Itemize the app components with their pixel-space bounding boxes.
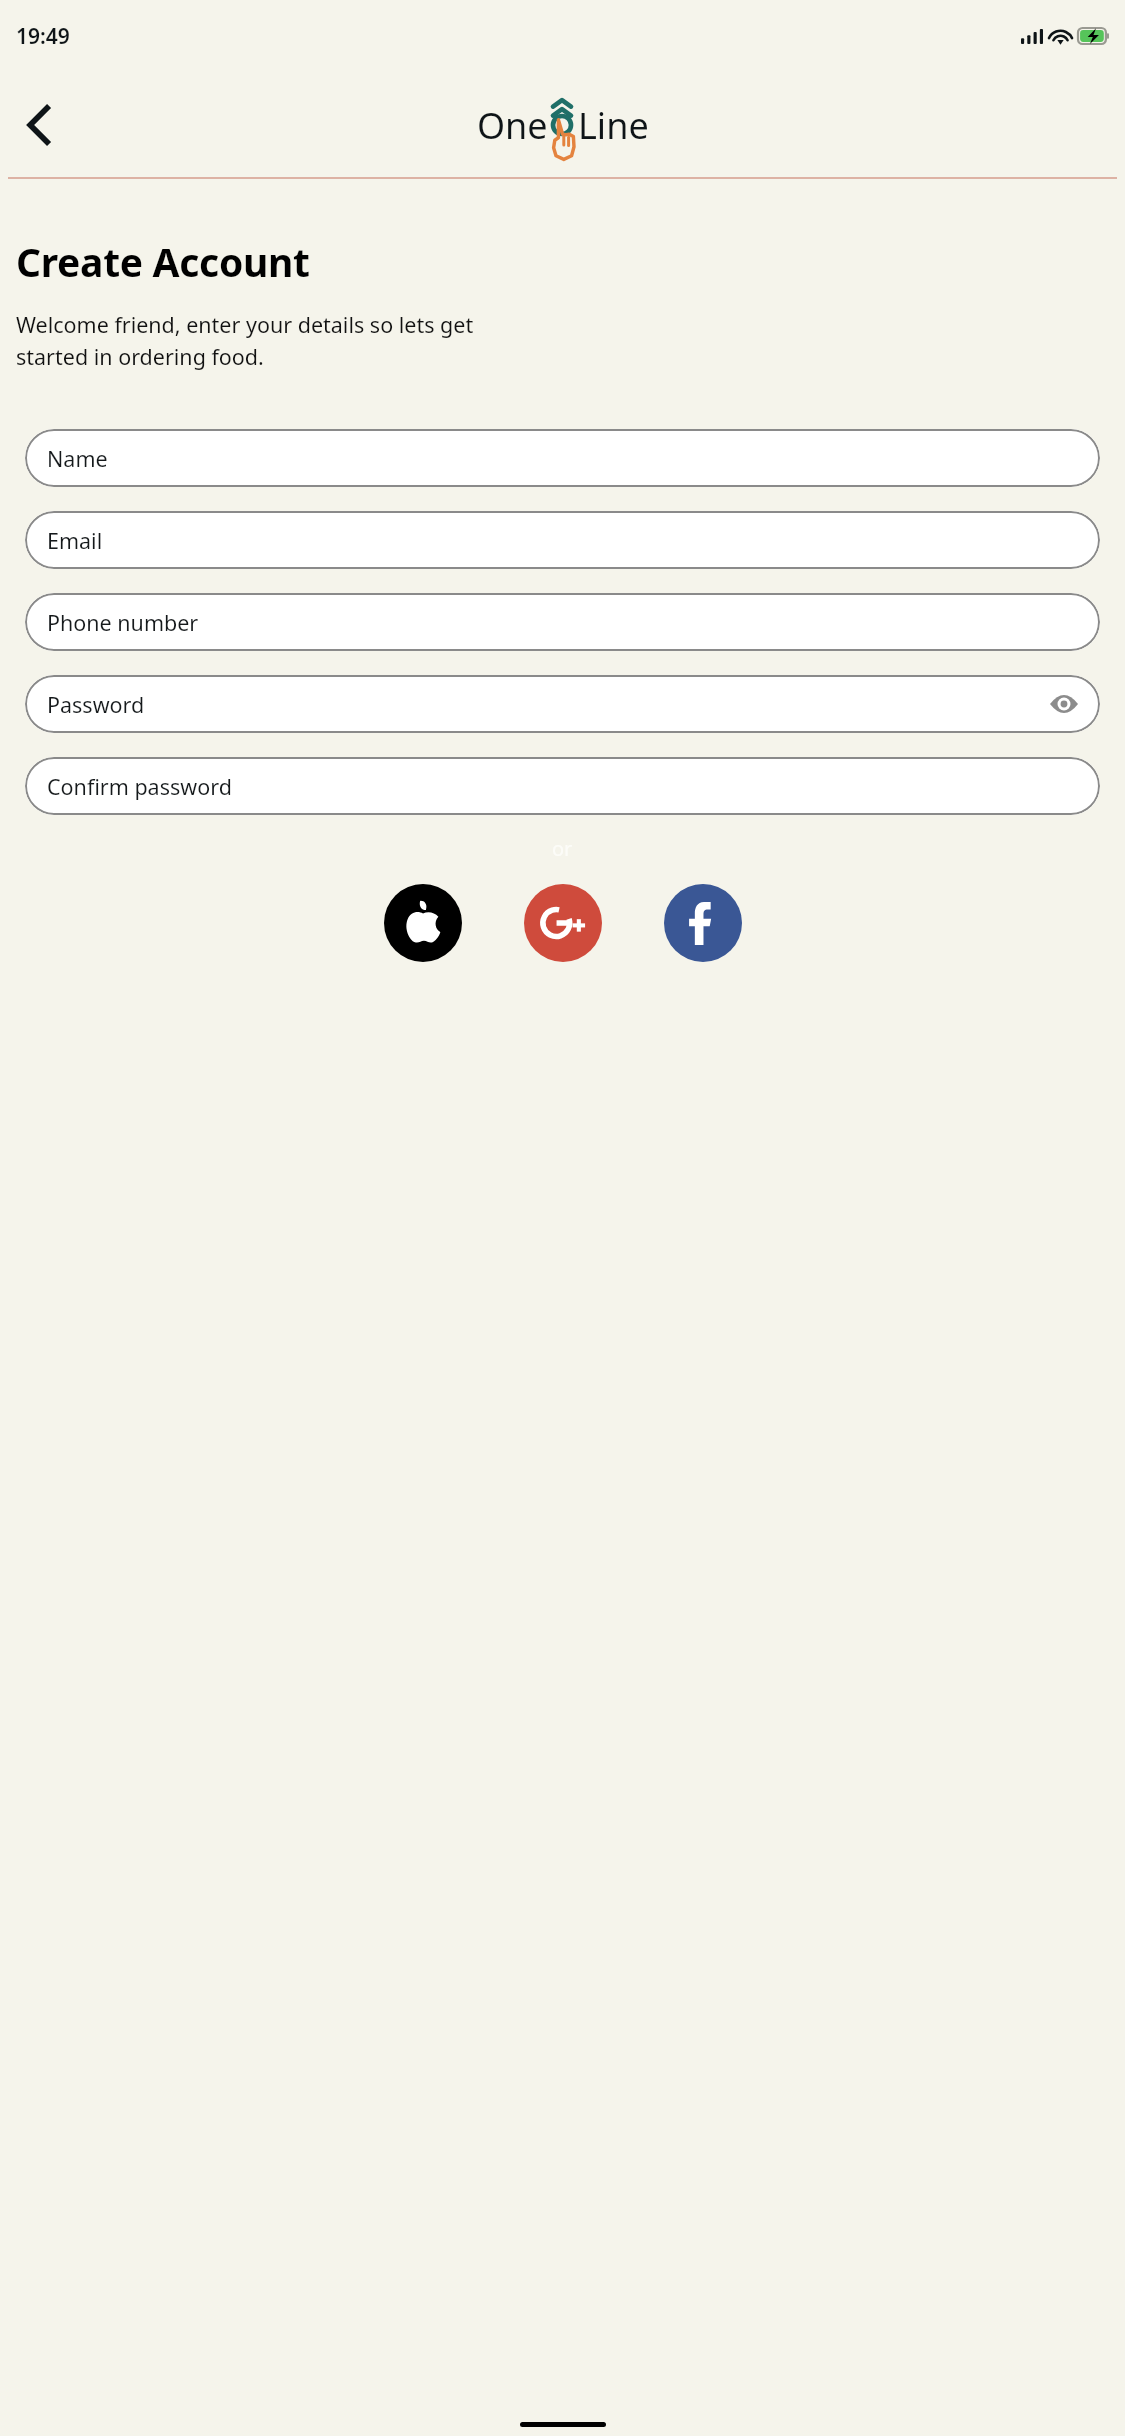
staticText: Confirm password (47, 772, 232, 801)
staticText: Create Account (16, 235, 310, 288)
button[interactable]: Password (25, 675, 1100, 733)
staticText: Phone number (47, 608, 199, 637)
staticText: 19:49 (16, 22, 70, 51)
button[interactable]: Phone number (25, 593, 1100, 651)
button[interactable]: Show password (1042, 682, 1086, 726)
staticText: Welcome friend, enter your details so le… (16, 310, 474, 371)
staticText: Password (47, 690, 145, 719)
button[interactable]: Email (25, 511, 1100, 569)
button[interactable]: Sign in with Facebook (664, 884, 742, 962)
button[interactable]: Back (10, 97, 66, 153)
button[interactable]: Confirm password (25, 757, 1100, 815)
staticText: or (552, 835, 573, 862)
staticText: Line (578, 101, 649, 150)
staticText: One (477, 101, 548, 150)
button[interactable]: Sign in with Google (524, 884, 602, 962)
button[interactable]: Name (25, 429, 1100, 487)
staticText: Name (47, 444, 108, 473)
staticText: Email (47, 526, 103, 555)
button[interactable]: Sign in with Apple (384, 884, 462, 962)
